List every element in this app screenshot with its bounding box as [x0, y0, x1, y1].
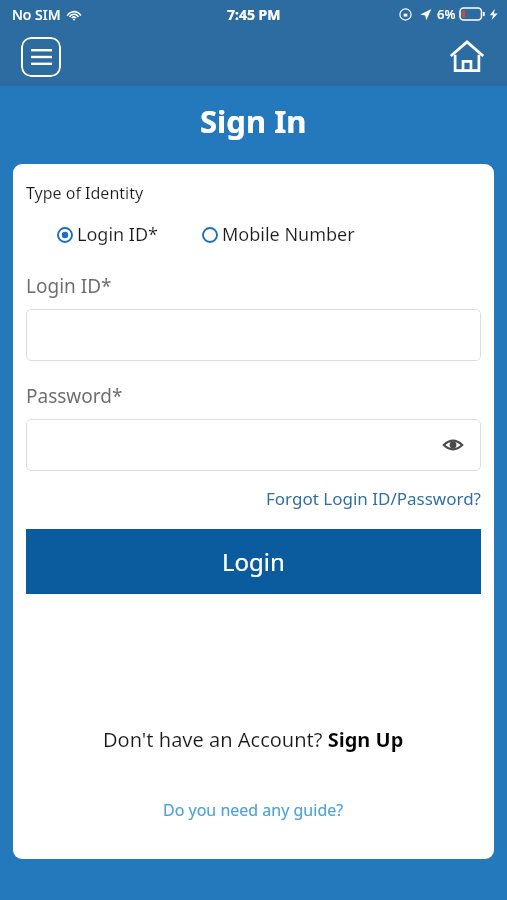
button[interactable]: Mobile Number — [202, 222, 355, 247]
staticText: Sign In — [200, 100, 307, 142]
button[interactable] — [26, 309, 481, 361]
button[interactable]: Show password — [439, 431, 467, 459]
staticText: 7:45 PM — [227, 5, 281, 24]
staticText: Login ID* — [77, 222, 158, 247]
staticText: Type of Identity — [26, 182, 144, 204]
staticText: Don't have an Account? Sign Up — [103, 726, 404, 753]
staticText: Password* — [26, 383, 123, 409]
staticText: Do you need any guide? — [163, 799, 344, 821]
button[interactable]: Home — [445, 35, 489, 79]
button[interactable]: Login ID* — [57, 222, 158, 247]
staticText: Forgot Login ID/Password? — [266, 487, 481, 510]
button[interactable]: Login — [26, 529, 481, 594]
button[interactable]: Do you need any guide? — [26, 799, 481, 821]
staticText: 6% — [437, 5, 456, 23]
staticText: Login ID* — [26, 273, 112, 299]
staticText: Login — [222, 545, 285, 578]
staticText: Mobile Number — [222, 222, 355, 247]
button[interactable]: Menu — [21, 37, 61, 77]
button[interactable]: Forgot Login ID/Password? — [266, 485, 481, 512]
button[interactable]: Don't have an Account? Sign Up — [26, 726, 481, 753]
staticText: No SIM — [12, 5, 61, 24]
button[interactable]: Show password — [26, 419, 481, 471]
